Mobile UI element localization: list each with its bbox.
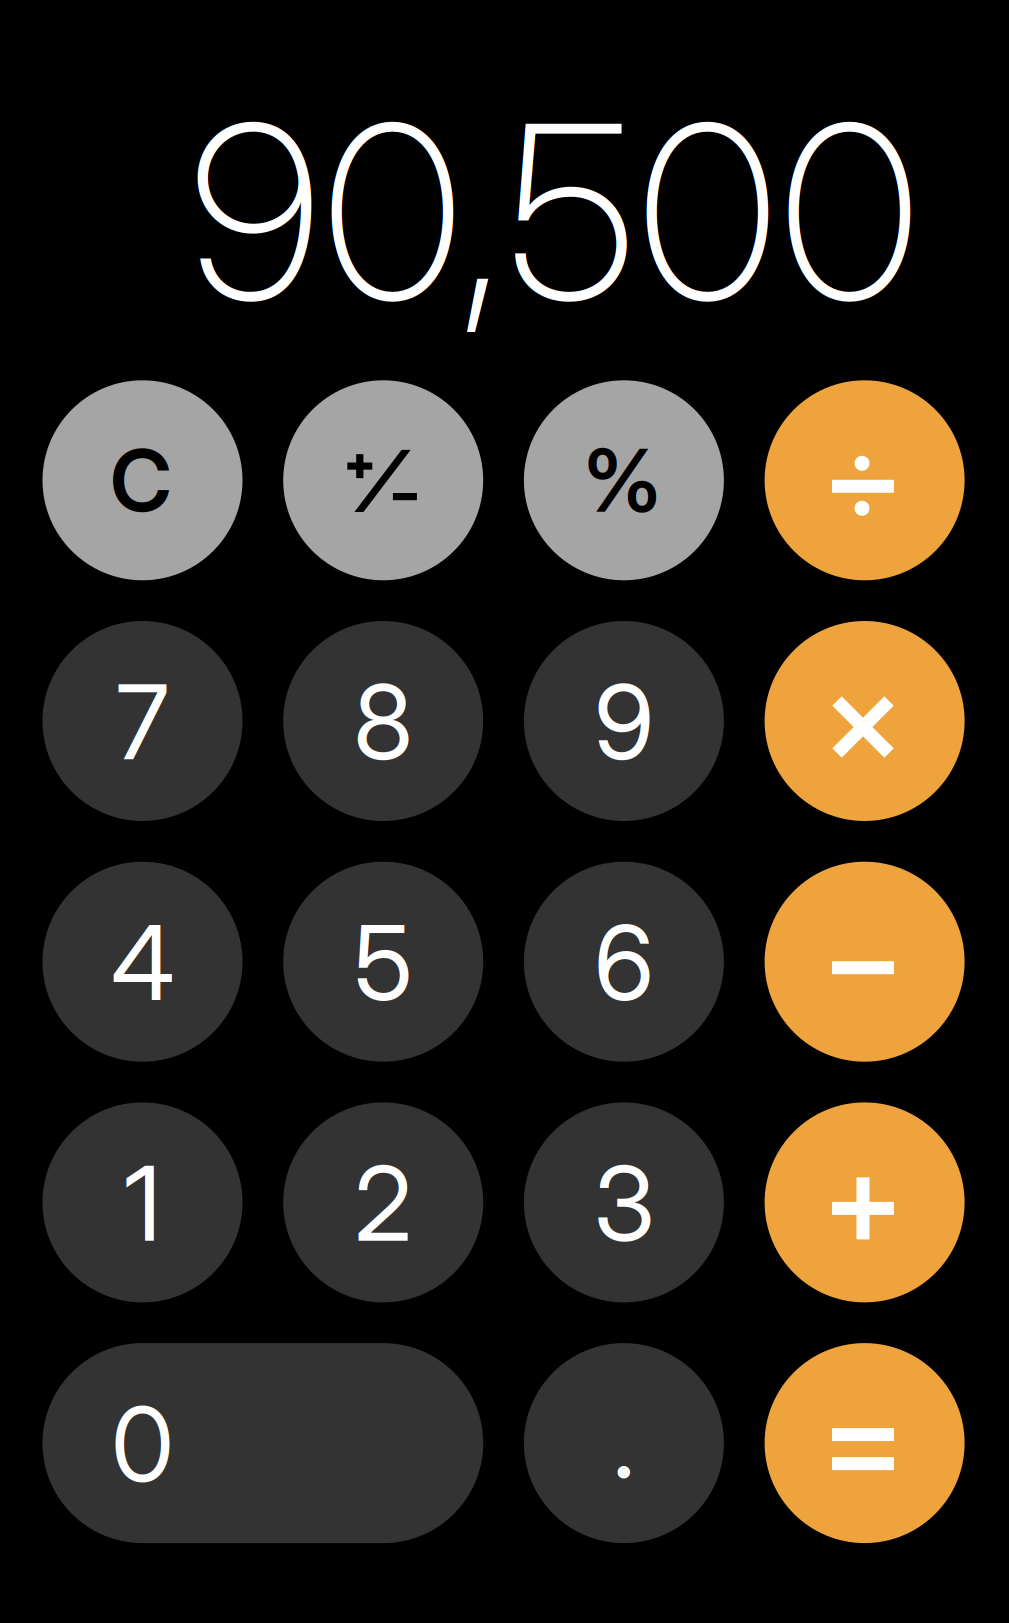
button[interactable]: Divide xyxy=(765,380,965,580)
button[interactable]: 9 xyxy=(524,621,724,821)
button[interactable]: 4 xyxy=(42,862,242,1062)
button[interactable]: 7 xyxy=(42,621,242,821)
staticText: 7 xyxy=(116,660,169,784)
button[interactable]: Plus minus xyxy=(283,380,483,580)
staticText: 1 xyxy=(124,1141,161,1265)
button[interactable]: Multiply xyxy=(765,621,965,821)
staticText: . xyxy=(612,1378,635,1502)
button[interactable]: 8 xyxy=(283,621,483,821)
button[interactable]: 2 xyxy=(283,1102,483,1302)
staticText: 3 xyxy=(593,1141,654,1265)
button[interactable]: 1 xyxy=(42,1102,242,1302)
button[interactable]: Equals xyxy=(765,1343,965,1543)
button[interactable]: 5 xyxy=(283,862,483,1062)
button[interactable]: C xyxy=(42,380,242,580)
button[interactable]: . xyxy=(524,1343,724,1543)
button[interactable]: % xyxy=(524,380,724,580)
staticText: 2 xyxy=(354,1141,412,1265)
button[interactable]: 6 xyxy=(524,862,724,1062)
staticText: 9 xyxy=(594,660,654,784)
button[interactable]: Add xyxy=(765,1102,965,1302)
staticText: % xyxy=(583,428,662,533)
staticText: 90,500 xyxy=(189,66,919,358)
staticText: 4 xyxy=(111,901,174,1025)
staticText: 8 xyxy=(353,660,413,784)
staticText: 5 xyxy=(354,901,413,1025)
button[interactable]: 3 xyxy=(524,1102,724,1302)
button[interactable]: 0 xyxy=(42,1343,483,1543)
button[interactable]: Subtract xyxy=(765,862,965,1062)
staticText: C xyxy=(110,429,172,532)
staticText: 0 xyxy=(111,1382,174,1506)
staticText: 6 xyxy=(594,901,654,1025)
